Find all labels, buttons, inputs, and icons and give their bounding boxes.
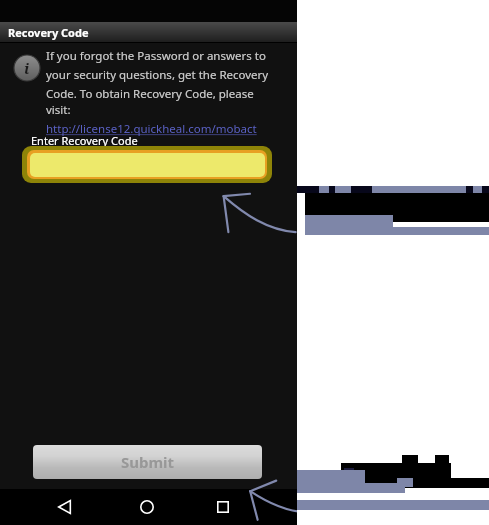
button[interactable]: Home [124,489,421,525]
button[interactable]: Recent apps [200,489,489,525]
staticText: If you forgot the Password or answers to [46,48,266,64]
staticText: i [24,58,30,78]
staticText: Enter Recovery Code [31,133,138,148]
staticText: Recovery Code [8,25,89,40]
button[interactable]: Submit [33,445,262,479]
button[interactable]: http://license12.quickheal.com/mobact [46,121,257,137]
staticText: Submit [121,452,175,472]
staticText: your security questions, get the Recover… [46,67,269,83]
button[interactable] [22,146,272,183]
staticText: http://license12.quickheal.com/mobact [46,121,257,137]
button[interactable]: Back [48,489,345,525]
staticText: Code. To obtain Recovery Code, please vi… [46,86,278,118]
